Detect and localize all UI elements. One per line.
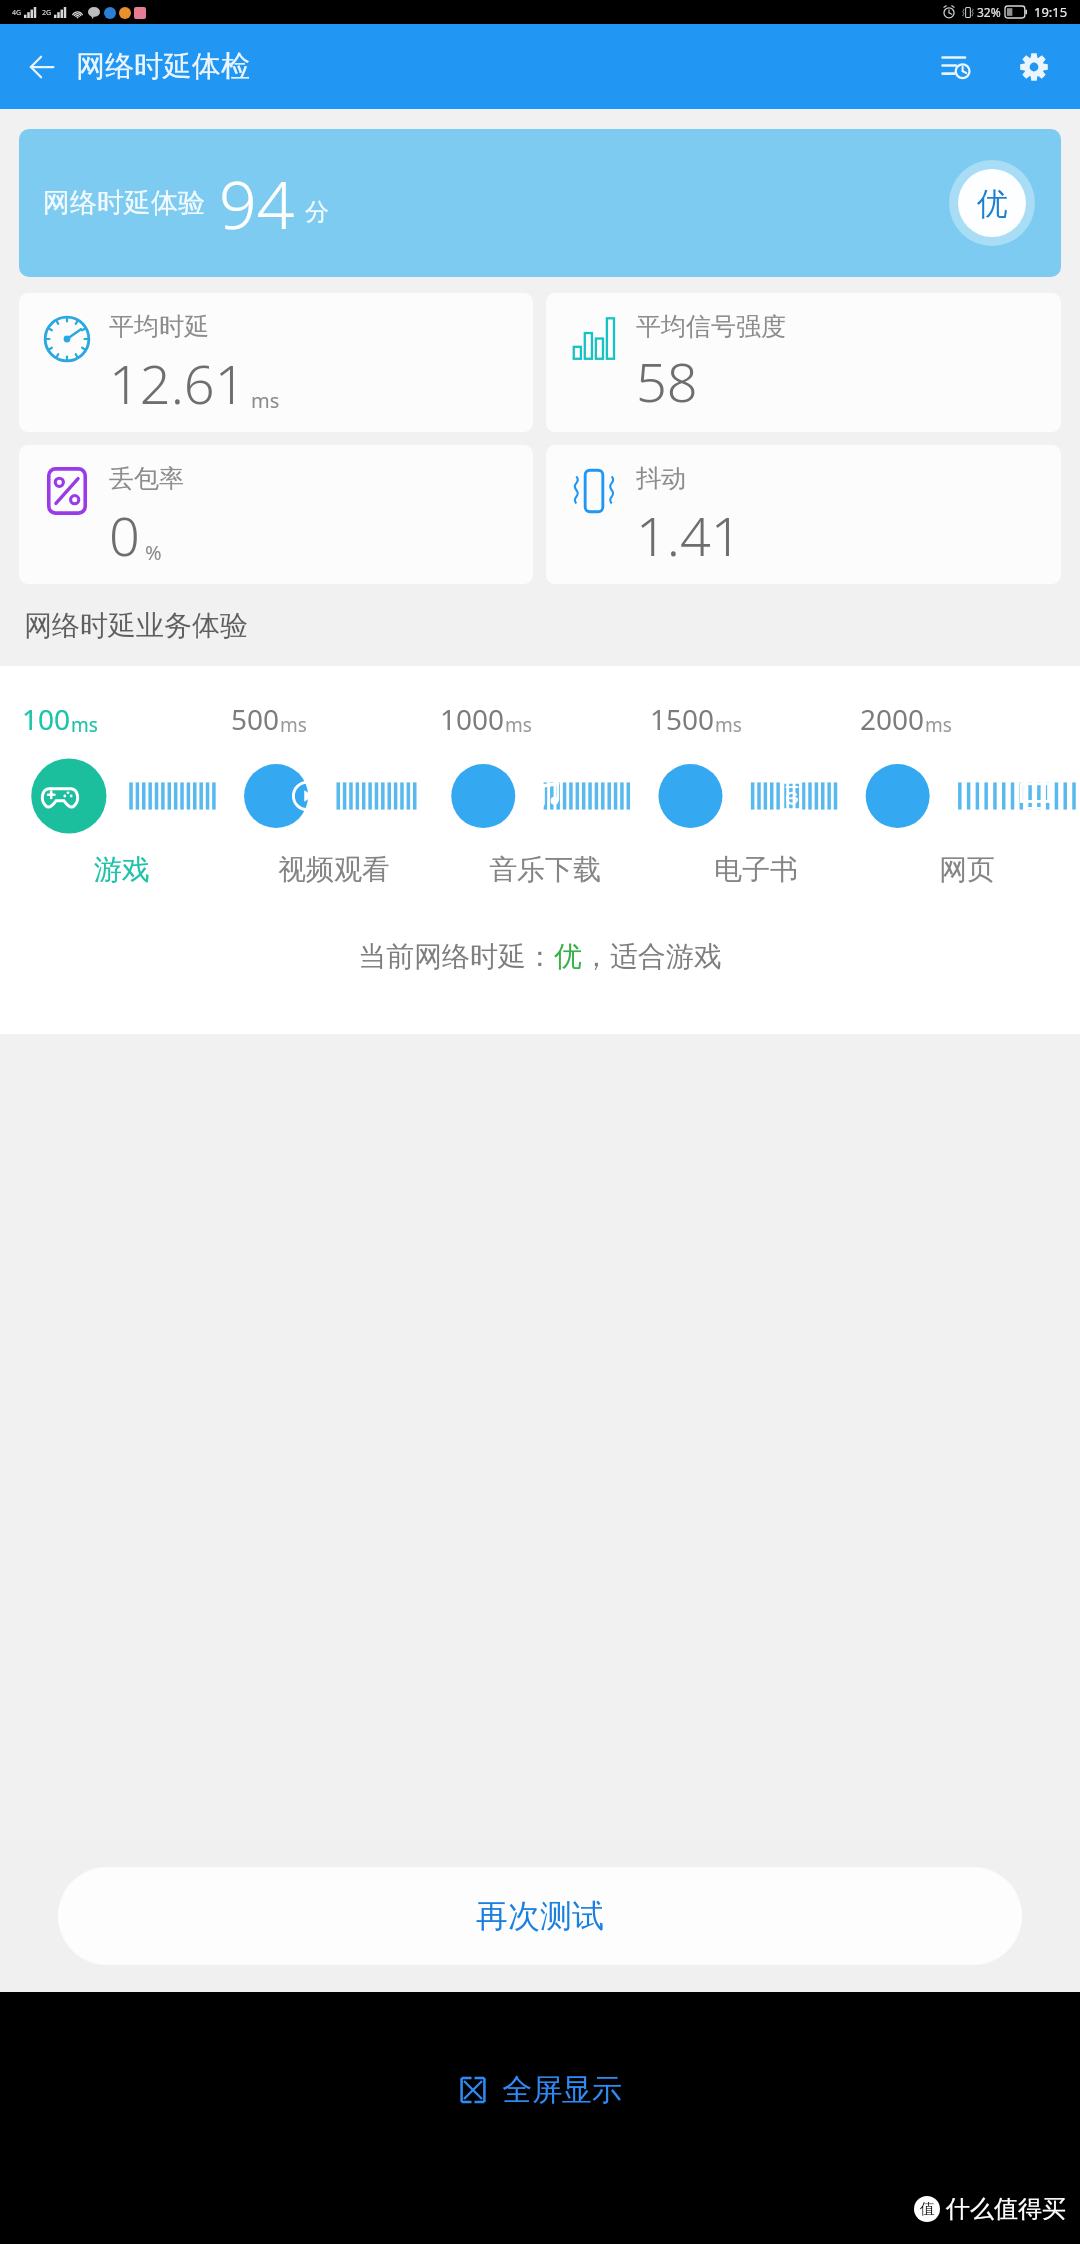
staticText: 分 (305, 197, 329, 227)
button[interactable]: 全屏显示 (458, 2071, 622, 2109)
staticText: 视频观看 (278, 852, 390, 887)
staticText: ms (505, 712, 532, 738)
staticText: 网络时延体验 (43, 186, 205, 220)
staticText: 电子书 (714, 852, 798, 887)
staticText: ms (715, 712, 742, 738)
button[interactable]: 丢包率 (19, 445, 533, 584)
staticText: 网络时延业务体验 (24, 608, 248, 643)
staticText: 12.61 (109, 346, 246, 420)
staticText: ms (71, 712, 98, 738)
staticText: 值 (920, 2200, 935, 2219)
button[interactable]: History (928, 39, 984, 95)
button[interactable]: 再次测试 (58, 1867, 1022, 1965)
staticText: 平均时延 (109, 311, 209, 342)
staticText: 平均信号强度 (636, 311, 786, 342)
staticText: 抖动 (636, 463, 686, 494)
staticText: 1500 (650, 700, 715, 738)
button[interactable]: 平均时延 (19, 293, 533, 432)
staticText: 58 (636, 344, 698, 418)
button[interactable]: Back (14, 39, 70, 95)
staticText: 什么值得买 (946, 2194, 1066, 2224)
staticText: 1.41 (636, 498, 742, 572)
staticText: 全屏显示 (502, 2071, 622, 2109)
staticText: 19:15 (1034, 3, 1068, 21)
button[interactable]: 视频观看 (278, 852, 390, 887)
staticText: 4G (12, 8, 22, 18)
button[interactable]: 电子书 (714, 852, 798, 887)
staticText: 丢包率 (109, 463, 184, 494)
staticText: 当前网络时延：优，适合游戏 (358, 939, 722, 974)
button[interactable]: 网络时延体验 (19, 129, 1061, 277)
staticText: 游戏 (94, 852, 150, 887)
button[interactable]: 抖动 (546, 445, 1061, 584)
button[interactable]: Settings (1006, 39, 1062, 95)
staticText: ms (925, 712, 952, 738)
button[interactable]: 音乐下载 (489, 852, 601, 887)
button[interactable]: 网页 (939, 852, 995, 887)
staticText: % (145, 539, 162, 566)
staticText: 网页 (939, 852, 995, 887)
staticText: ms (280, 712, 307, 738)
staticText: 500 (231, 700, 280, 738)
staticText: ms (251, 387, 280, 414)
staticText: 94 (219, 158, 295, 248)
staticText: 网络时延体检 (76, 48, 250, 85)
staticText: 优 (977, 184, 1008, 223)
staticText: 32% (977, 4, 1001, 20)
staticText: 2000 (860, 700, 925, 738)
staticText: 再次测试 (476, 1896, 604, 1936)
staticText: 2G (42, 8, 52, 18)
staticText: 0 (109, 498, 140, 572)
staticText: 100 (22, 700, 71, 738)
button[interactable]: 游戏 (94, 852, 150, 887)
staticText: 音乐下载 (489, 852, 601, 887)
button[interactable]: 平均信号强度 (546, 293, 1061, 432)
staticText: 1000 (440, 700, 505, 738)
